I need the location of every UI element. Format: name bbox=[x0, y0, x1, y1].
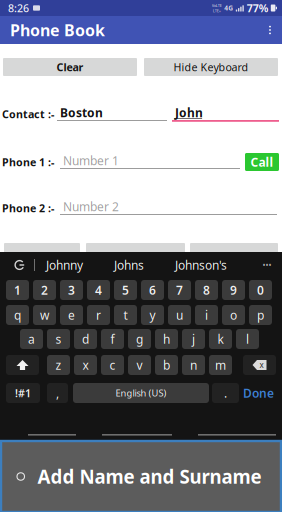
staticText: 4 bbox=[95, 282, 102, 298]
staticText: e bbox=[68, 307, 75, 323]
staticText: v bbox=[136, 357, 142, 373]
staticText: Contact :- bbox=[2, 107, 54, 121]
staticText: VoLTE bbox=[212, 3, 222, 8]
button[interactable]: 4 bbox=[87, 280, 110, 300]
button[interactable]: English (US) bbox=[73, 383, 209, 403]
staticText: d bbox=[82, 331, 89, 347]
button[interactable]: c bbox=[101, 355, 124, 375]
button[interactable]: Johns bbox=[114, 253, 144, 277]
button[interactable]: Done bbox=[240, 383, 277, 403]
button[interactable]: More options bbox=[260, 16, 280, 44]
staticText: !#1 bbox=[15, 386, 31, 400]
button[interactable]: v bbox=[128, 355, 151, 375]
staticText: l bbox=[246, 331, 249, 347]
button[interactable]: 2 bbox=[33, 280, 56, 300]
button[interactable]: 8 bbox=[195, 280, 218, 300]
button[interactable]: a bbox=[20, 329, 43, 349]
staticText: Done bbox=[243, 385, 274, 401]
staticText: k bbox=[217, 331, 223, 347]
staticText: Phone 2 :- bbox=[2, 201, 54, 215]
staticText: f bbox=[110, 331, 114, 347]
staticText: a bbox=[28, 331, 35, 347]
button[interactable]: Shift bbox=[6, 355, 39, 375]
staticText: John bbox=[175, 104, 203, 120]
button[interactable]: f bbox=[101, 329, 124, 349]
button[interactable]: w bbox=[33, 305, 56, 325]
button[interactable]: e bbox=[60, 305, 83, 325]
button[interactable]: m bbox=[209, 355, 232, 375]
button[interactable]: Johnny bbox=[46, 253, 83, 277]
button[interactable]: Hide Keyboard bbox=[144, 58, 278, 76]
staticText: s bbox=[55, 331, 61, 347]
staticText: 9 bbox=[230, 282, 237, 298]
button[interactable]: s bbox=[47, 329, 70, 349]
staticText: ••• bbox=[262, 260, 271, 270]
button[interactable]: t bbox=[114, 305, 137, 325]
button[interactable]: j bbox=[182, 329, 205, 349]
staticText: Number 1 bbox=[63, 152, 119, 168]
staticText: Number 2 bbox=[63, 198, 119, 214]
button[interactable]: x bbox=[74, 355, 97, 375]
button[interactable]: 7 bbox=[168, 280, 191, 300]
staticText: Phone Book bbox=[10, 19, 105, 41]
staticText: h bbox=[163, 331, 170, 347]
button[interactable]: Johnson's bbox=[175, 253, 227, 277]
button[interactable]: Save bbox=[4, 243, 80, 253]
staticText: Johns bbox=[114, 257, 144, 273]
button[interactable]: b bbox=[155, 355, 178, 375]
staticText: x bbox=[82, 357, 88, 373]
staticText: b bbox=[163, 357, 170, 373]
button[interactable]: h bbox=[155, 329, 178, 349]
button[interactable]: k bbox=[209, 329, 232, 349]
button[interactable]: o bbox=[222, 305, 245, 325]
button[interactable]: 5 bbox=[114, 280, 137, 300]
button[interactable]: y bbox=[141, 305, 164, 325]
staticText: 6 bbox=[149, 282, 156, 298]
button[interactable]: i bbox=[195, 305, 218, 325]
staticText: u bbox=[176, 307, 183, 323]
staticText: Johnny bbox=[46, 257, 83, 273]
button[interactable]: Clear bbox=[3, 58, 137, 76]
staticText: 3 bbox=[68, 282, 75, 298]
staticText: Call bbox=[250, 154, 273, 170]
button[interactable]: Update bbox=[86, 243, 185, 253]
button[interactable]: q bbox=[6, 305, 29, 325]
button[interactable]: 1 bbox=[6, 280, 29, 300]
staticText: Johnson's bbox=[175, 257, 227, 273]
staticText: , bbox=[56, 385, 59, 401]
staticText: q bbox=[14, 307, 21, 323]
button[interactable]: !#1 bbox=[6, 383, 40, 403]
button[interactable]: 6 bbox=[141, 280, 164, 300]
button[interactable]: z bbox=[47, 355, 70, 375]
staticText: j bbox=[192, 331, 195, 347]
button[interactable]: r bbox=[87, 305, 110, 325]
staticText: LTE+ bbox=[213, 8, 221, 13]
staticText: o bbox=[230, 307, 237, 323]
button[interactable]: , bbox=[47, 383, 68, 403]
staticText: n bbox=[190, 357, 197, 373]
staticText: 8 bbox=[203, 282, 210, 298]
staticText: 8:26 bbox=[8, 1, 29, 15]
button[interactable]: g bbox=[128, 329, 151, 349]
staticText: 0 bbox=[257, 282, 264, 298]
staticText: 7 bbox=[176, 282, 183, 298]
button[interactable]: l bbox=[236, 329, 259, 349]
button[interactable]: Backspace bbox=[243, 355, 276, 375]
button[interactable]: . bbox=[212, 383, 239, 403]
button[interactable]: u bbox=[168, 305, 191, 325]
button[interactable]: 9 bbox=[222, 280, 245, 300]
button[interactable]: More suggestions bbox=[258, 253, 276, 277]
button[interactable]: Delete bbox=[190, 243, 278, 253]
button[interactable]: Call bbox=[245, 153, 279, 171]
button[interactable]: 0 bbox=[249, 280, 272, 300]
staticText: Phone 1 :- bbox=[2, 155, 54, 169]
staticText: w bbox=[40, 307, 49, 323]
staticText: r bbox=[96, 307, 101, 323]
button[interactable]: n bbox=[182, 355, 205, 375]
button[interactable]: p bbox=[249, 305, 272, 325]
staticText: 4G bbox=[224, 4, 233, 12]
button[interactable]: d bbox=[74, 329, 97, 349]
staticText: Clear bbox=[56, 60, 83, 74]
button[interactable]: 3 bbox=[60, 280, 83, 300]
staticText: Boston bbox=[60, 104, 103, 120]
